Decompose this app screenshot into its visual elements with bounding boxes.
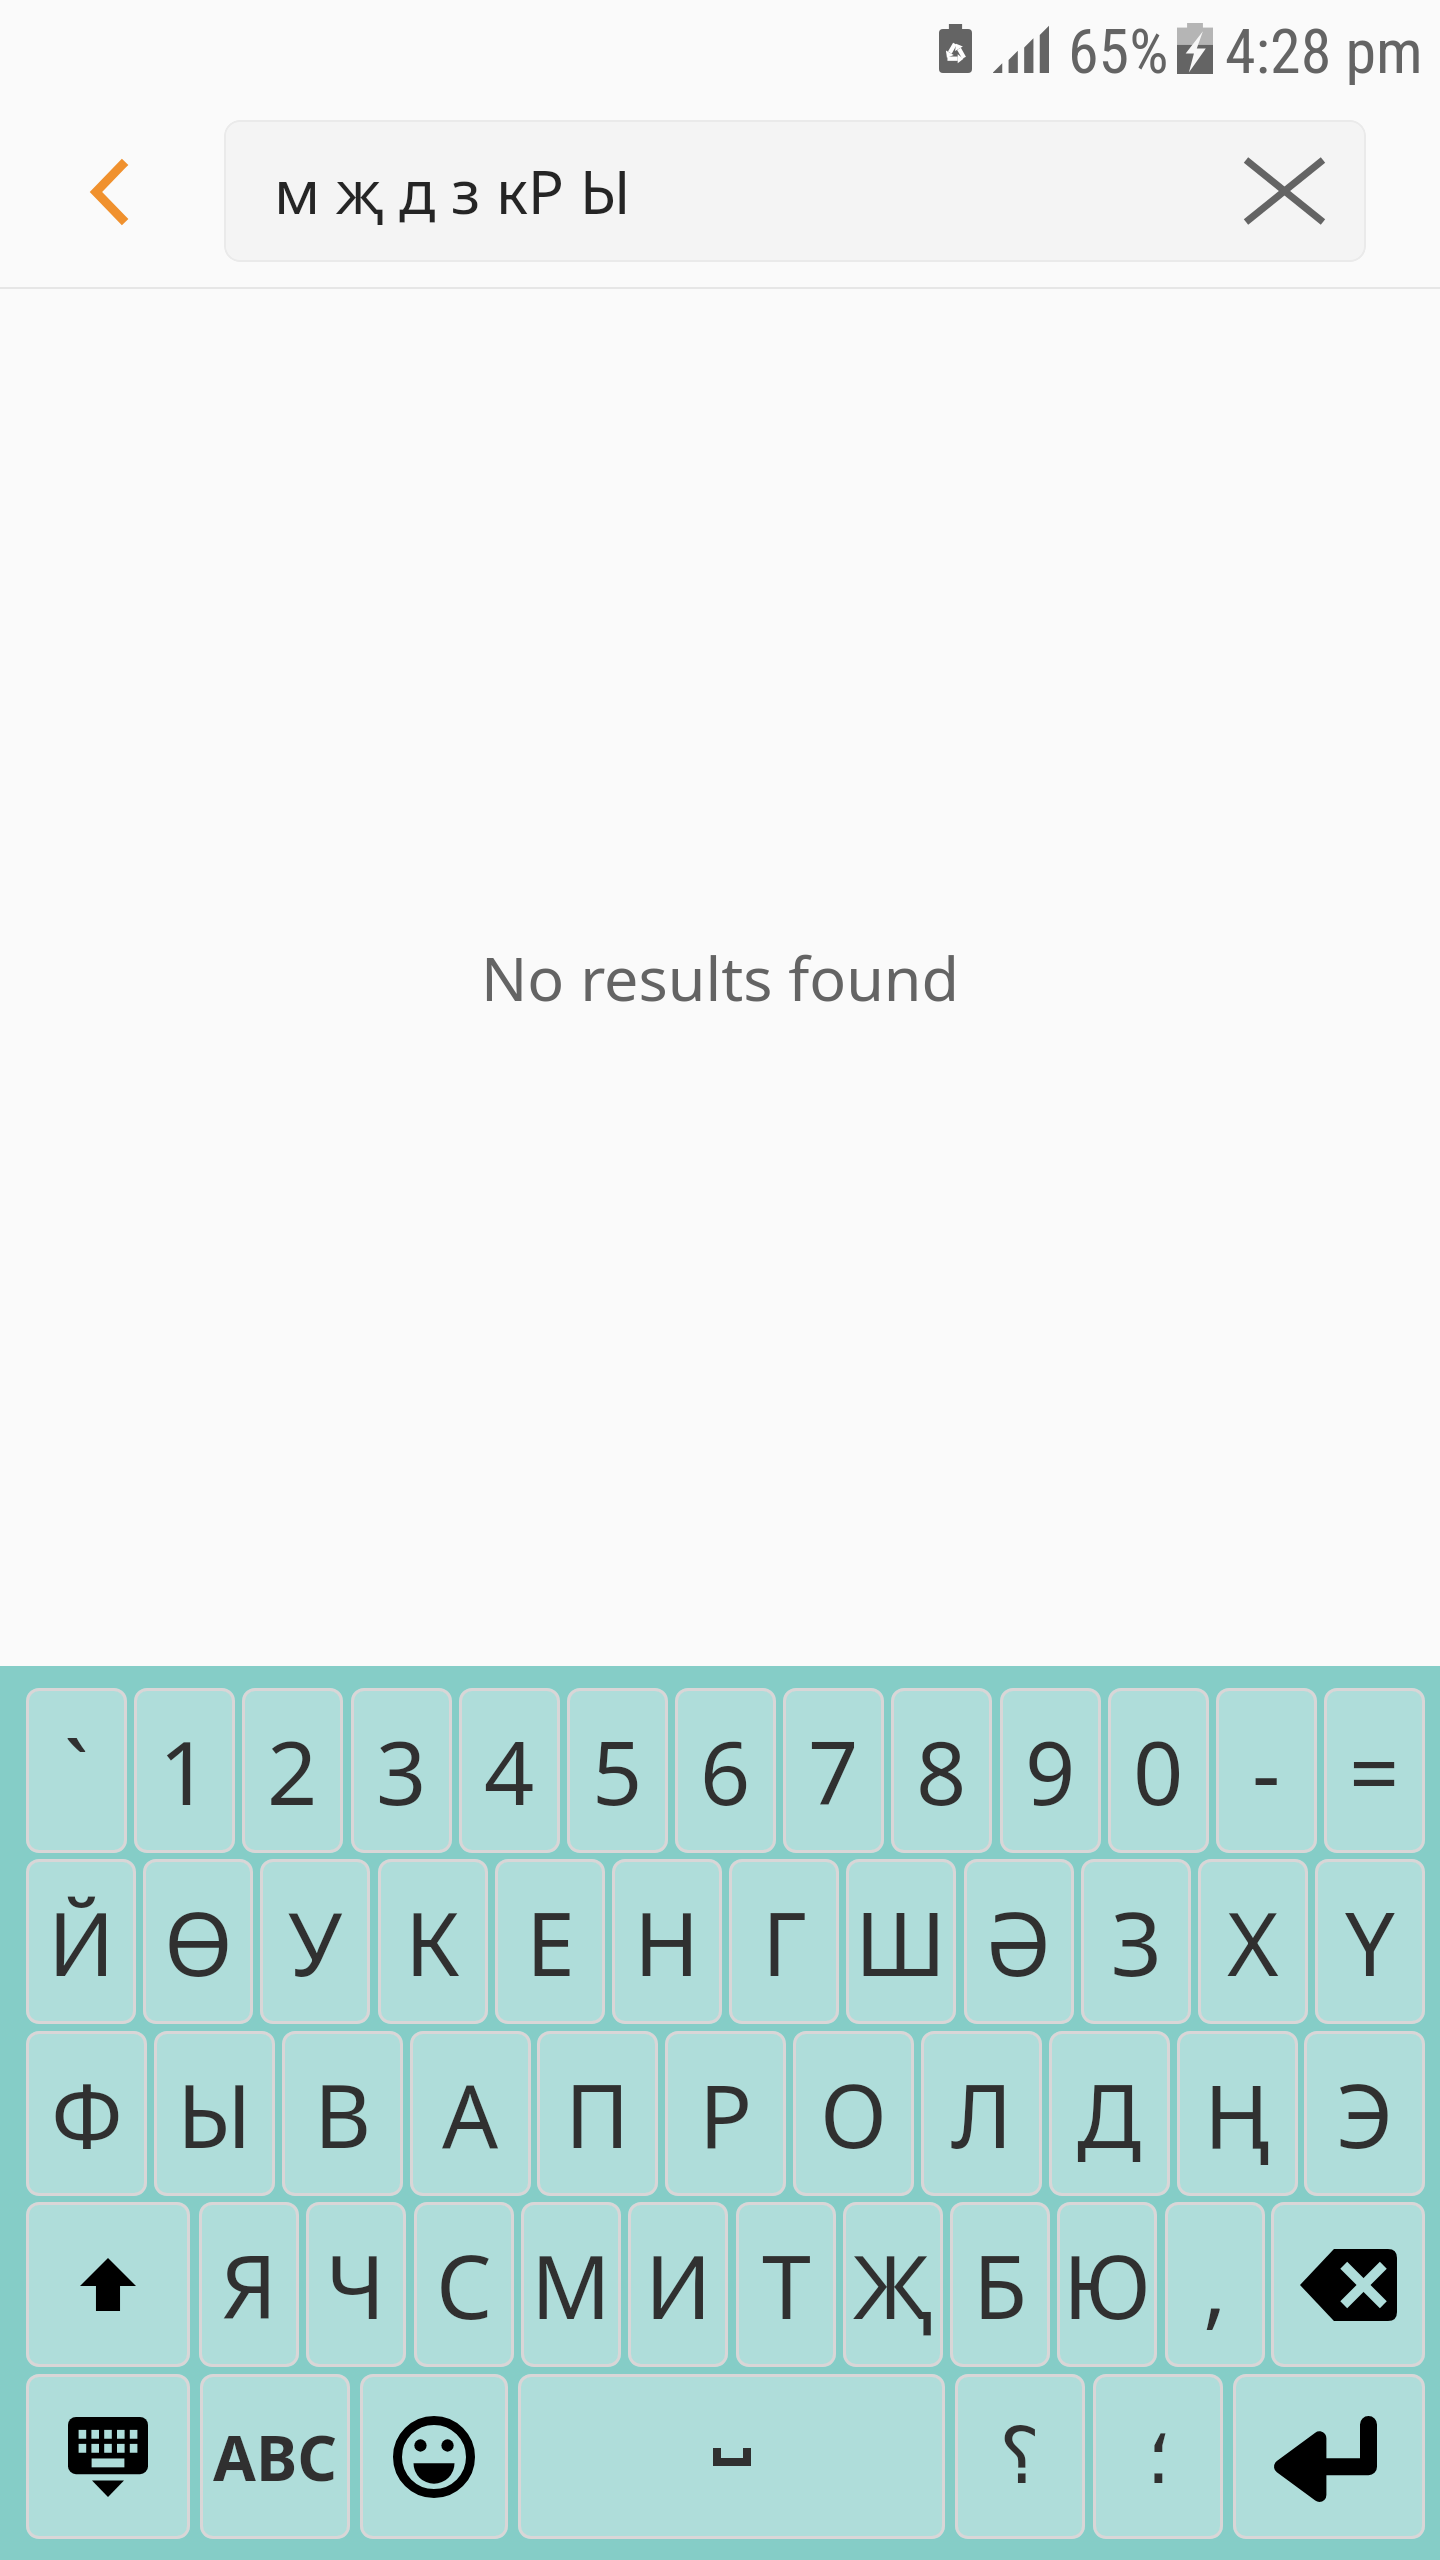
staticText: ,	[1203, 2225, 1227, 2345]
staticText: Ө	[164, 1882, 233, 2002]
staticText: ABC	[213, 2415, 337, 2499]
button[interactable]: 0	[1108, 1688, 1209, 1853]
button[interactable]: Д	[1049, 2031, 1170, 2196]
staticText: 5	[592, 1711, 643, 1831]
button[interactable]: Ң	[1177, 2031, 1298, 2196]
button[interactable]: Ү	[1315, 1859, 1425, 2024]
button[interactable]: ABC	[200, 2374, 350, 2539]
staticText: Т	[762, 2225, 811, 2345]
staticText: м җ д з кР Ы	[274, 150, 631, 232]
button[interactable]: Й	[26, 1859, 136, 2024]
button[interactable]: Т	[736, 2202, 836, 2367]
button[interactable]: ؛	[1093, 2374, 1223, 2539]
staticText: Л	[951, 2054, 1013, 2174]
button[interactable]: И	[628, 2202, 728, 2367]
button[interactable]: О	[793, 2031, 914, 2196]
staticText: Я	[221, 2225, 278, 2345]
button[interactable]: =	[1324, 1688, 1425, 1853]
staticText: Ю	[1063, 2225, 1151, 2345]
button[interactable]: К	[378, 1859, 488, 2024]
button[interactable]: 8	[891, 1688, 992, 1853]
staticText: Ү	[1345, 1882, 1395, 2002]
button[interactable]: 7	[783, 1688, 884, 1853]
button[interactable]: Б	[950, 2202, 1050, 2367]
button[interactable]: 5	[567, 1688, 668, 1853]
button[interactable]: Ы	[154, 2031, 275, 2196]
button[interactable]: Л	[921, 2031, 1042, 2196]
button[interactable]: 1	[134, 1688, 235, 1853]
button[interactable]: ,	[1165, 2202, 1265, 2367]
button[interactable]: У	[260, 1859, 370, 2024]
button[interactable]: 9	[1000, 1688, 1101, 1853]
staticText: Ш	[855, 1882, 947, 2002]
staticText: ؟	[999, 2411, 1041, 2502]
staticText: М	[531, 2225, 611, 2345]
button[interactable]: Е	[495, 1859, 605, 2024]
staticText: 2	[267, 1711, 318, 1831]
button[interactable]: Ә	[964, 1859, 1074, 2024]
button[interactable]: Emoji	[360, 2374, 508, 2539]
button[interactable]: Ю	[1057, 2202, 1157, 2367]
button[interactable]: М	[521, 2202, 621, 2367]
button[interactable]: Ч	[306, 2202, 406, 2367]
staticText: О	[820, 2054, 887, 2174]
button[interactable]: 4	[459, 1688, 560, 1853]
button[interactable]: ؟	[955, 2374, 1085, 2539]
staticText: 4:28 pm	[1225, 15, 1423, 88]
button[interactable]: Э	[1304, 2031, 1425, 2196]
button[interactable]: П	[537, 2031, 658, 2196]
button[interactable]: Backspace	[1271, 2202, 1425, 2367]
button[interactable]: В	[282, 2031, 403, 2196]
staticText: 4	[484, 1711, 535, 1831]
staticText: Н	[634, 1882, 700, 2002]
button[interactable]: Н	[612, 1859, 722, 2024]
staticText: Х	[1227, 1882, 1279, 2002]
staticText: 7	[808, 1711, 859, 1831]
staticText: 3	[376, 1711, 427, 1831]
staticText: Д	[1077, 2054, 1142, 2174]
staticText: 65%	[1068, 15, 1169, 88]
button[interactable]: Ф	[26, 2031, 147, 2196]
staticText: И	[645, 2225, 712, 2345]
button[interactable]: Җ	[843, 2202, 943, 2367]
staticText: З	[1111, 1882, 1162, 2002]
staticText: Ф	[51, 2054, 123, 2174]
staticText: Ч	[326, 2225, 386, 2345]
button[interactable]: А	[410, 2031, 531, 2196]
button[interactable]: Hide keyboard	[26, 2374, 190, 2539]
staticText: П	[565, 2054, 630, 2174]
button[interactable]: Р	[665, 2031, 786, 2196]
button[interactable]: С	[414, 2202, 514, 2367]
button[interactable]: Я	[199, 2202, 299, 2367]
button[interactable]: 2	[242, 1688, 343, 1853]
staticText: ؛	[1146, 2411, 1171, 2502]
button[interactable]: м җ д з кР Ы	[224, 120, 1366, 262]
button[interactable]: Г	[729, 1859, 839, 2024]
staticText: А	[442, 2054, 499, 2174]
button[interactable]: Enter	[1233, 2374, 1425, 2539]
button[interactable]: `	[26, 1688, 127, 1853]
staticText: =	[1349, 1711, 1400, 1831]
staticText: -	[1252, 1711, 1281, 1831]
button[interactable]: -	[1216, 1688, 1317, 1853]
button[interactable]: Ш	[846, 1859, 956, 2024]
button[interactable]: 3	[351, 1688, 452, 1853]
button[interactable]: 6	[675, 1688, 776, 1853]
staticText: Б	[973, 2225, 1028, 2345]
button[interactable]: Shift	[26, 2202, 190, 2367]
button[interactable]: З	[1081, 1859, 1191, 2024]
button[interactable]: Ө	[143, 1859, 253, 2024]
button[interactable]: Back	[61, 144, 157, 240]
button[interactable]: Х	[1198, 1859, 1308, 2024]
button[interactable]: Clear search	[1224, 131, 1344, 251]
staticText: К	[405, 1882, 461, 2002]
staticText: 1	[159, 1711, 210, 1831]
staticText: У	[288, 1882, 343, 2002]
staticText: No results found	[481, 936, 960, 1019]
staticText: Е	[526, 1882, 575, 2002]
staticText: 9	[1025, 1711, 1076, 1831]
staticText: Р	[699, 2054, 753, 2174]
button[interactable]: Space	[518, 2374, 945, 2539]
staticText: 6	[700, 1711, 751, 1831]
staticText: Җ	[853, 2225, 933, 2345]
